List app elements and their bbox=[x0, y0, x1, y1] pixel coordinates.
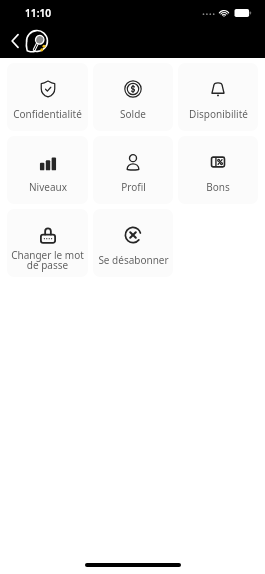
staticText: Profil bbox=[121, 180, 146, 194]
staticText: Niveaux bbox=[29, 180, 67, 194]
button[interactable]: Confidentialité bbox=[7, 63, 88, 131]
staticText: Confidentialité bbox=[13, 107, 82, 121]
staticText: Disponibilité bbox=[189, 107, 248, 121]
button[interactable]: Profil bbox=[93, 136, 173, 204]
button[interactable]: Niveaux bbox=[7, 136, 88, 204]
button[interactable]: Back bbox=[4, 30, 26, 52]
staticText: Se désabonner bbox=[98, 253, 169, 267]
button[interactable]: Changer le mot de passe bbox=[7, 209, 88, 277]
button[interactable]: Se désabonner bbox=[93, 209, 173, 277]
button[interactable]: Solde bbox=[93, 63, 173, 131]
button[interactable]: Bons bbox=[178, 136, 258, 204]
button[interactable]: Disponibilité bbox=[178, 63, 258, 131]
staticText: Changer le mot de passe bbox=[10, 248, 85, 272]
staticText: Solde bbox=[120, 107, 146, 121]
staticText: Bons bbox=[206, 180, 230, 194]
button[interactable]: App logo bbox=[25, 29, 49, 53]
staticText: 11:10 bbox=[25, 6, 52, 20]
